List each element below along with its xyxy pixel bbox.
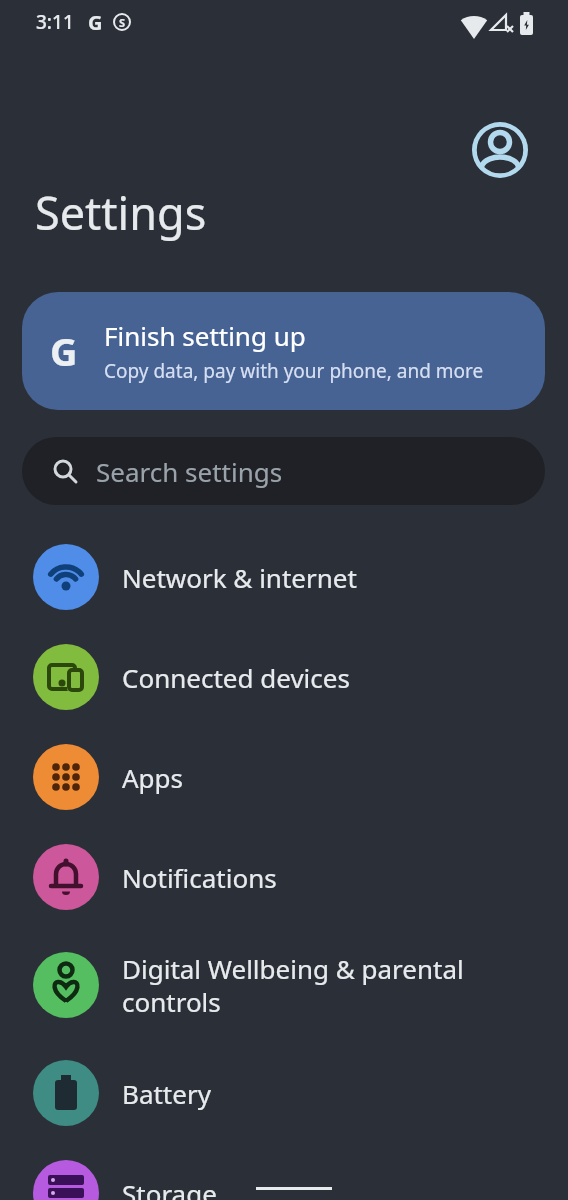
button[interactable]: G [22,292,545,410]
staticText: Connected devices [122,660,350,695]
button[interactable]: Connected devices [0,627,568,727]
button[interactable]: Battery [0,1043,568,1143]
staticText: Network & internet [122,560,357,595]
staticText: G [88,9,103,36]
staticText: Notifications [122,860,277,895]
staticText: Storage [122,1176,217,1200]
staticText: Copy data, pay with your phone, and more [104,358,484,384]
staticText: Settings [35,182,207,243]
staticText: Battery [122,1076,211,1111]
staticText: 3:11 [36,9,74,35]
button[interactable]: Network & internet [0,527,568,627]
staticText: S [119,15,126,30]
button[interactable]: Notifications [0,827,568,927]
staticText: Digital Wellbeing & parental controls [122,951,464,1020]
button[interactable]: Storage [0,1143,568,1200]
staticText: Finish setting up [104,318,306,353]
staticText: G [50,325,78,377]
button[interactable] [472,122,528,178]
button[interactable]: Search settings [22,437,545,505]
staticText: Apps [122,760,184,795]
button[interactable]: Apps [0,727,568,827]
staticText: Search settings [96,454,283,489]
button[interactable]: Digital Wellbeing & parental controls [0,927,568,1043]
